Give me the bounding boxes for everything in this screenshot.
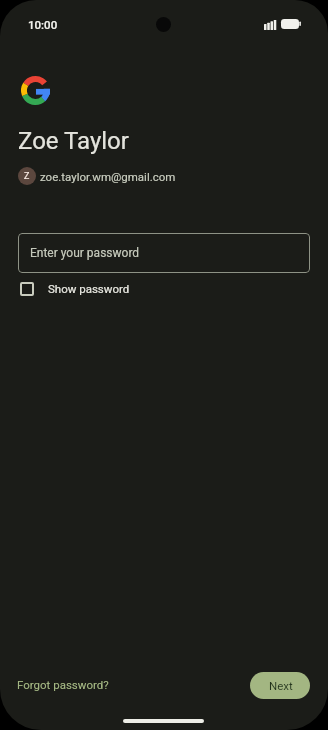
staticText: Z [24,171,30,182]
staticText: zoe.taylor.wm@gmail.com [40,170,176,183]
other: Mobile signal [264,20,277,30]
staticText: Enter your password [30,246,140,260]
staticText: 10:00 [28,18,58,31]
staticText: Next [269,679,293,692]
other: Google [21,76,50,105]
button[interactable]: Enter your password [18,233,310,273]
other: Battery [281,19,301,29]
staticText: Zoe Taylor [18,127,129,155]
button[interactable]: Show password [18,280,130,297]
staticText: Show password [48,282,130,295]
button[interactable]: Next [250,672,310,699]
button[interactable]: Forgot password? [11,673,115,696]
